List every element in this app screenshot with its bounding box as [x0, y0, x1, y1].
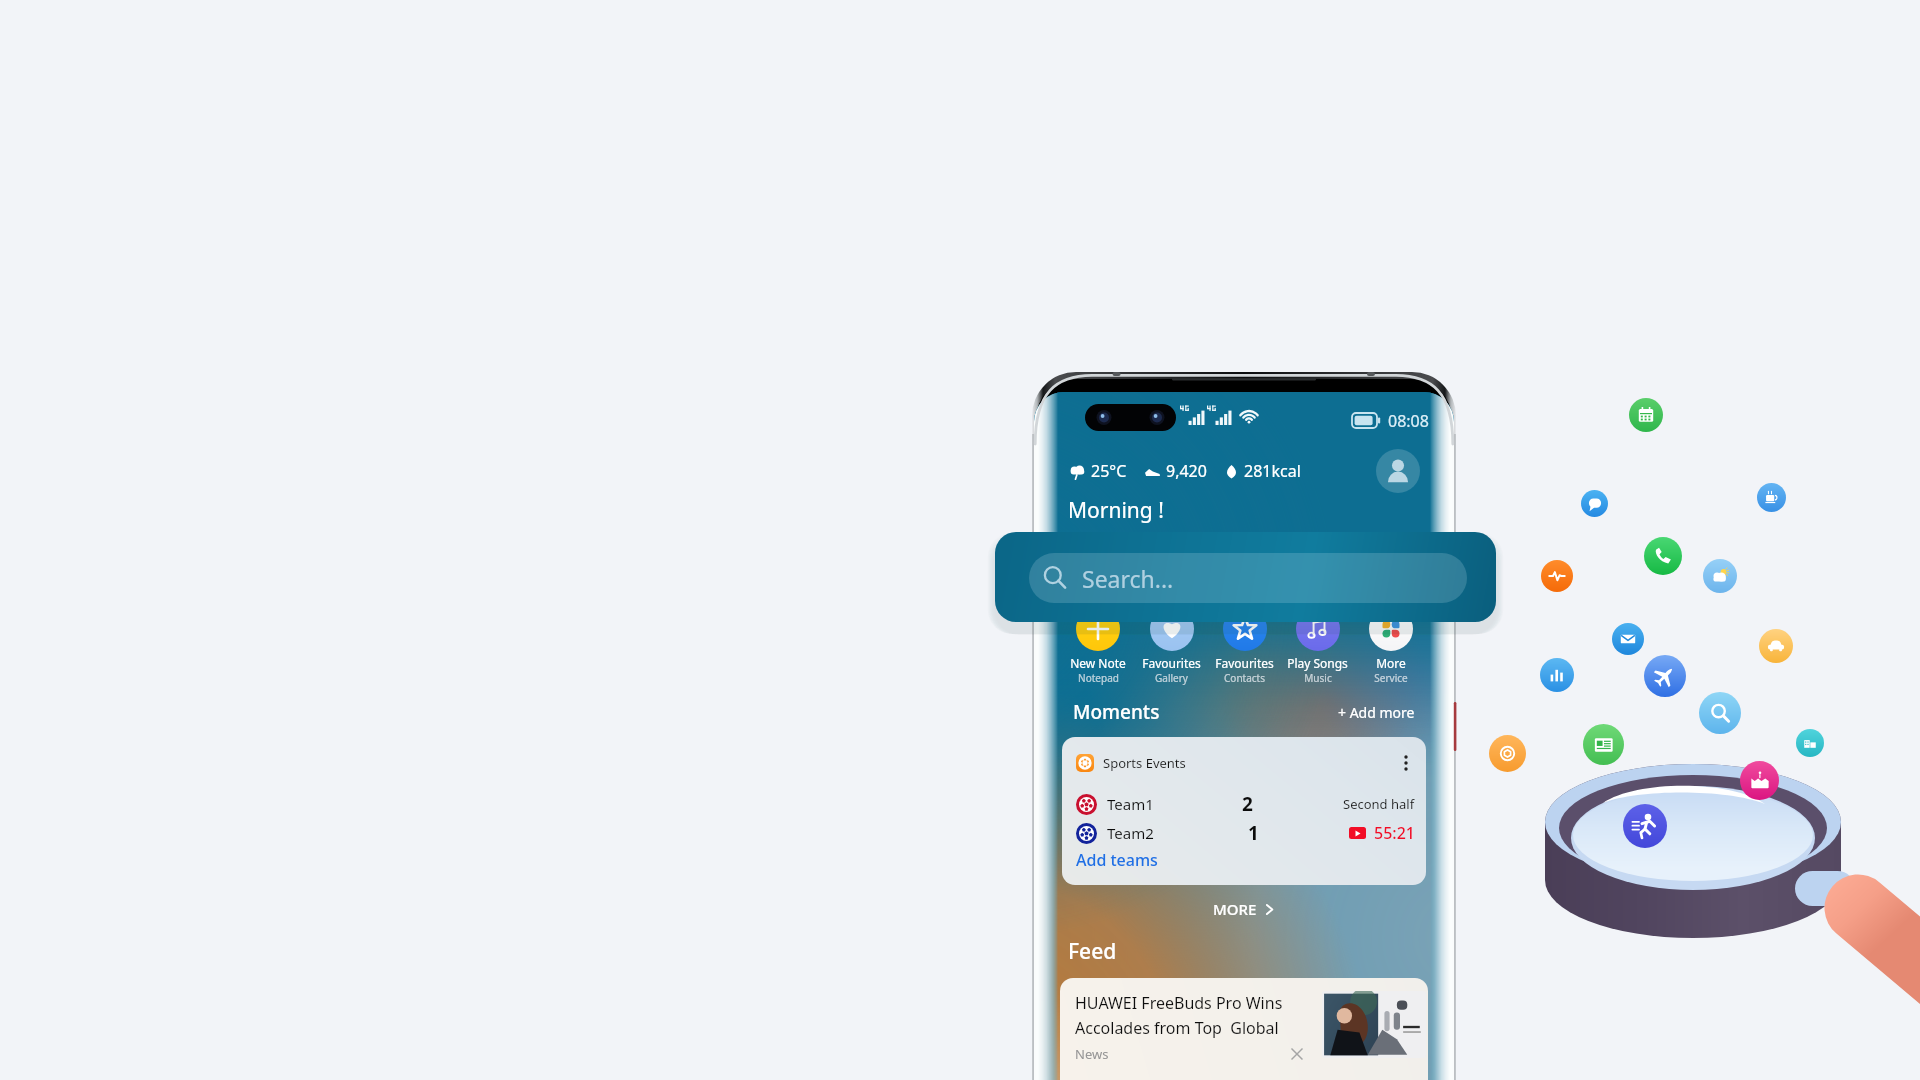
- button[interactable]: car: [1759, 629, 1793, 663]
- button[interactable]: More: [1354, 607, 1427, 685]
- button[interactable]: Sports Events: [1062, 737, 1426, 885]
- button[interactable]: coffee: [1757, 483, 1786, 512]
- staticText: Sports Events: [1103, 754, 1186, 772]
- staticText: + Add more: [1338, 703, 1415, 722]
- button[interactable]: health: [1541, 560, 1573, 592]
- staticText: New Note: [1070, 655, 1126, 671]
- button[interactable]: Dismiss: [1289, 1046, 1305, 1062]
- staticText: Notepad: [1078, 671, 1119, 685]
- button[interactable]: Play Songs: [1281, 607, 1354, 685]
- staticText: Play Songs: [1287, 655, 1348, 671]
- staticText: 25°C: [1091, 460, 1127, 482]
- staticText: News: [1075, 1045, 1109, 1063]
- button[interactable]: chat: [1581, 490, 1608, 517]
- staticText: 08:08: [1388, 410, 1429, 432]
- button[interactable]: news: [1583, 724, 1624, 765]
- staticText: HUAWEI FreeBuds Pro Wins: [1075, 992, 1283, 1014]
- staticText: MORE: [1213, 899, 1257, 919]
- button[interactable]: phone: [1644, 537, 1682, 575]
- staticText: Favourites: [1215, 655, 1274, 671]
- staticText: 281kcal: [1244, 460, 1301, 482]
- button[interactable]: Profile: [1376, 449, 1420, 493]
- staticText: 55:21: [1374, 822, 1415, 844]
- button[interactable]: weather: [1703, 559, 1737, 593]
- button[interactable]: chart: [1540, 658, 1574, 692]
- staticText: Team2: [1107, 823, 1154, 843]
- button[interactable]: Favourites: [1135, 607, 1208, 685]
- button[interactable]: calendar: [1629, 398, 1663, 432]
- staticText: Gallery: [1155, 671, 1188, 685]
- button[interactable]: + Add more: [1338, 703, 1415, 722]
- staticText: Second half: [1343, 795, 1415, 813]
- button[interactable]: Birthday: [1740, 761, 1779, 800]
- button[interactable]: plane: [1644, 655, 1686, 697]
- staticText: Moments: [1073, 699, 1160, 725]
- button[interactable]: city: [1796, 729, 1824, 757]
- button[interactable]: New Note: [1061, 607, 1135, 685]
- staticText: Morning !: [1068, 496, 1164, 525]
- button[interactable]: Fitness: [1623, 804, 1667, 848]
- button[interactable]: mail: [1612, 623, 1644, 655]
- staticText: Feed: [1068, 937, 1117, 966]
- button[interactable]: ball: [1489, 735, 1526, 772]
- button[interactable]: Search...: [995, 532, 1496, 622]
- button[interactable]: search: [1699, 692, 1741, 734]
- staticText: More: [1376, 655, 1406, 671]
- staticText: 9,420: [1166, 460, 1207, 482]
- staticText: 1: [1248, 820, 1259, 846]
- button[interactable]: HUAWEI FreeBuds Pro Wins: [1060, 978, 1428, 1080]
- staticText: Team1: [1107, 794, 1154, 814]
- staticText: Accolades from Top Global: [1075, 1017, 1279, 1039]
- staticText: Search...: [1082, 563, 1174, 594]
- button[interactable]: MORE: [1053, 899, 1435, 919]
- staticText: 2: [1242, 791, 1253, 817]
- staticText: Favourites: [1142, 655, 1201, 671]
- staticText: Music: [1304, 671, 1332, 685]
- button[interactable]: Favourites: [1208, 607, 1281, 685]
- staticText: Contacts: [1224, 671, 1265, 685]
- button[interactable]: Add teams: [1076, 849, 1158, 871]
- button[interactable]: More options: [1397, 753, 1415, 773]
- staticText: Service: [1374, 671, 1408, 685]
